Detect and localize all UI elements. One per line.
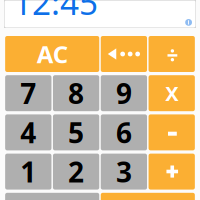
button[interactable]: 6 (101, 114, 147, 150)
button[interactable]: Operator (148, 154, 195, 190)
button[interactable]: Operator (148, 114, 195, 150)
button[interactable]: 8 (53, 75, 99, 111)
staticText: 7 (20, 75, 36, 112)
staticText: 1 (20, 153, 36, 190)
button[interactable]: 7 (5, 75, 51, 111)
staticText: 3 (116, 153, 132, 190)
button[interactable]: 9 (101, 75, 147, 111)
button[interactable]: 1 (5, 154, 51, 190)
staticText: 5 (68, 114, 84, 151)
staticText: AC (37, 38, 68, 70)
staticText: 6 (116, 114, 132, 151)
staticText: X (165, 80, 178, 106)
button[interactable]: Operator (148, 75, 195, 111)
staticText: 8 (68, 75, 84, 112)
button[interactable]: 3 (101, 154, 147, 190)
button[interactable]: Parentheses (189, 0, 196, 7)
button[interactable]: AC (5, 36, 99, 72)
button[interactable]: Divide (148, 36, 195, 72)
button[interactable]: = (101, 193, 195, 200)
button[interactable]: Delete (101, 36, 147, 72)
staticText: 4 (20, 114, 36, 151)
staticText: 2 (68, 153, 84, 190)
staticText: 12:45 (13, 0, 98, 24)
button[interactable]: 4 (5, 114, 51, 150)
button[interactable]: 5 (53, 114, 99, 150)
staticText: 0 (44, 192, 60, 200)
staticText: 9 (116, 75, 132, 112)
button[interactable]: 2 (53, 154, 99, 190)
